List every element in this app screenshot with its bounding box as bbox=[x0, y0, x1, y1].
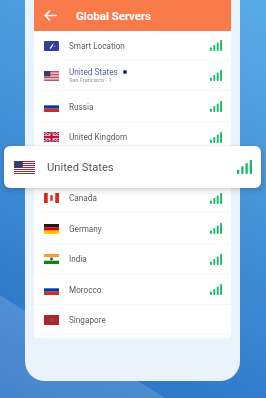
button[interactable]: United Kingdom bbox=[34, 122, 231, 152]
button[interactable]: United States bbox=[4, 146, 261, 188]
button[interactable]: Singapore bbox=[34, 305, 231, 335]
staticText: United States bbox=[47, 161, 114, 174]
button[interactable]: India bbox=[34, 244, 231, 274]
button[interactable]: Russia bbox=[34, 91, 231, 122]
staticText: India bbox=[69, 254, 87, 264]
staticText: San Francisco - 1 bbox=[69, 77, 112, 84]
button[interactable]: United States bbox=[34, 60, 231, 91]
staticText: Morocco bbox=[69, 285, 102, 295]
staticText: United States bbox=[69, 67, 118, 77]
staticText: Singapore bbox=[69, 315, 106, 325]
staticText: France bbox=[69, 163, 94, 173]
button[interactable]: Germany bbox=[34, 213, 231, 244]
staticText: United Kingdom bbox=[69, 132, 128, 142]
button[interactable]: Canada bbox=[34, 183, 231, 213]
button[interactable]: Back bbox=[41, 4, 64, 27]
staticText: Canada bbox=[69, 193, 97, 203]
button[interactable]: Morocco bbox=[34, 274, 231, 305]
staticText: Smart Location bbox=[69, 41, 125, 51]
staticText: Russia bbox=[69, 102, 94, 112]
staticText: Global Servers bbox=[76, 9, 151, 22]
staticText: Germany bbox=[69, 224, 102, 234]
button[interactable]: France bbox=[34, 152, 231, 183]
button[interactable]: Smart Location bbox=[34, 31, 231, 60]
